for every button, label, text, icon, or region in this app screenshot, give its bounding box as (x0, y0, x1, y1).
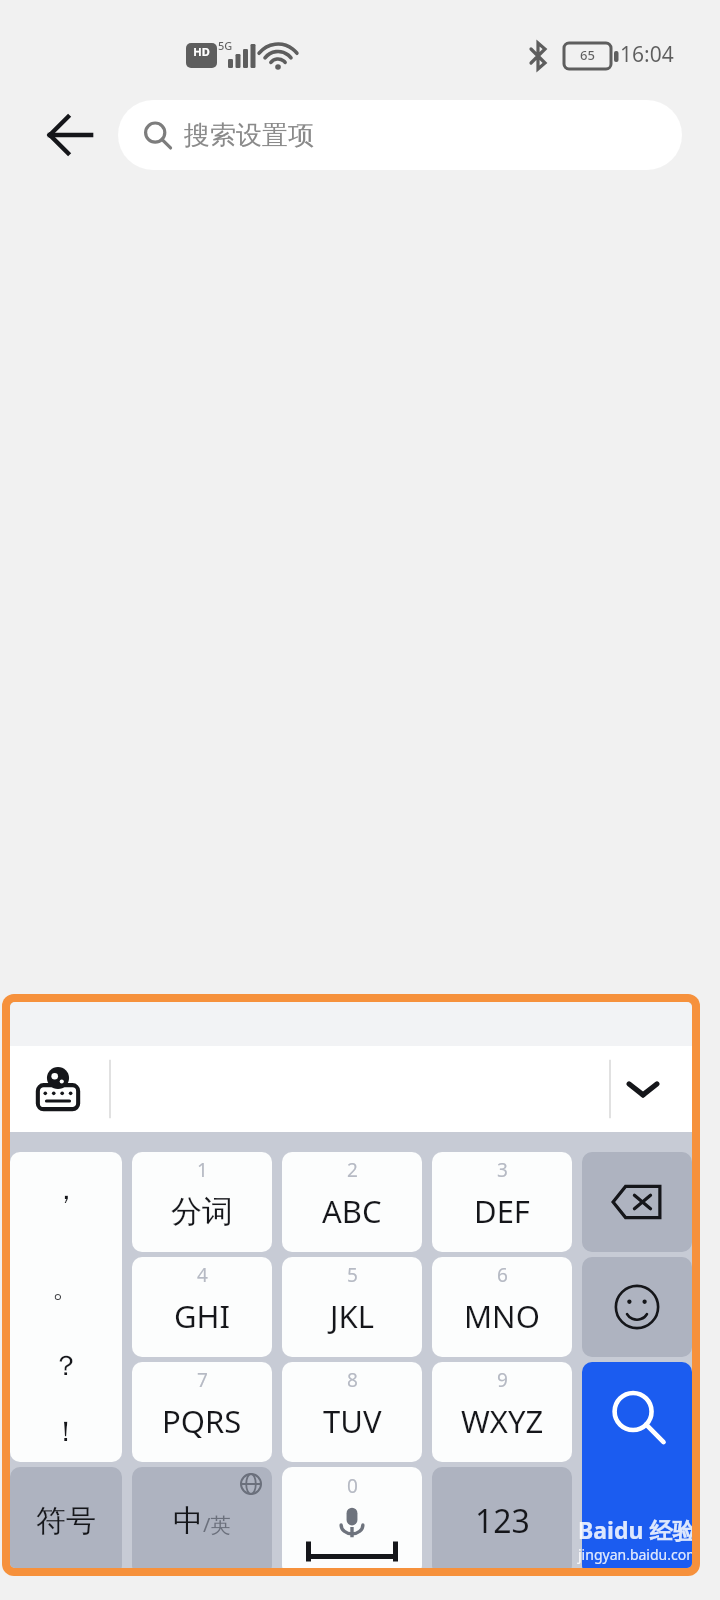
staticText: Baidu 经验 (578, 1514, 692, 1545)
staticText: 。 (52, 1270, 80, 1305)
button[interactable]: 3 (432, 1152, 572, 1252)
button[interactable]: 8 (282, 1362, 422, 1462)
button[interactable]: 2 (282, 1152, 422, 1252)
button[interactable]: 4 (132, 1257, 272, 1357)
staticText: DEF (474, 1190, 530, 1232)
button[interactable]: Emoji (582, 1257, 692, 1357)
button[interactable]: 符号 (10, 1467, 122, 1568)
staticText: 0 (347, 1473, 358, 1499)
button[interactable]: 1 (132, 1152, 272, 1252)
staticText: 5 (347, 1262, 358, 1288)
button[interactable]: Switch input method (22, 1053, 94, 1125)
staticText: ABC (322, 1190, 382, 1232)
button[interactable]: 9 (432, 1362, 572, 1462)
staticText: 6 (497, 1262, 508, 1288)
staticText: 1 (197, 1157, 208, 1183)
staticText: WXYZ (461, 1400, 544, 1442)
staticText: 搜索设置项 (184, 119, 314, 152)
staticText: jingyan.baidu.com (578, 1545, 692, 1564)
staticText: PQRS (162, 1400, 242, 1442)
button[interactable]: 7 (132, 1362, 272, 1462)
staticText: ！ (52, 1414, 80, 1449)
staticText: ？ (52, 1348, 80, 1383)
button[interactable]: Back (28, 100, 112, 170)
button[interactable]: 5 (282, 1257, 422, 1357)
staticText: HD (186, 44, 217, 59)
button[interactable]: Backspace (582, 1152, 692, 1252)
button[interactable]: 中英切换 (132, 1467, 272, 1568)
staticText: 7 (197, 1367, 208, 1393)
staticText: 3 (497, 1157, 508, 1183)
staticText: GHI (174, 1295, 231, 1337)
button[interactable]: Hide keyboard (602, 1053, 684, 1125)
staticText: TUV (323, 1400, 382, 1442)
button[interactable]: 搜索设置项 (118, 100, 682, 170)
staticText: /英 (203, 1511, 231, 1538)
button[interactable]: Punctuation (10, 1152, 122, 1462)
staticText: 9 (497, 1367, 508, 1393)
staticText: 65 (564, 46, 611, 64)
staticText: 8 (347, 1367, 358, 1393)
staticText: JKL (330, 1295, 374, 1337)
staticText: 2 (347, 1157, 358, 1183)
staticText: 123 (475, 1499, 530, 1543)
staticText: 分词 (171, 1192, 233, 1231)
button[interactable]: 6 (432, 1257, 572, 1357)
staticText: 符号 (36, 1502, 96, 1540)
button[interactable]: 123 (432, 1467, 572, 1568)
staticText: 中 (173, 1502, 203, 1540)
button[interactable]: Search (582, 1362, 692, 1568)
staticText: ， (52, 1172, 80, 1207)
staticText: 5G (218, 38, 233, 53)
button[interactable]: Space, voice input (282, 1467, 422, 1568)
staticText: 4 (197, 1262, 208, 1288)
staticText: MNO (464, 1295, 540, 1337)
staticText: 16:04 (620, 40, 674, 69)
